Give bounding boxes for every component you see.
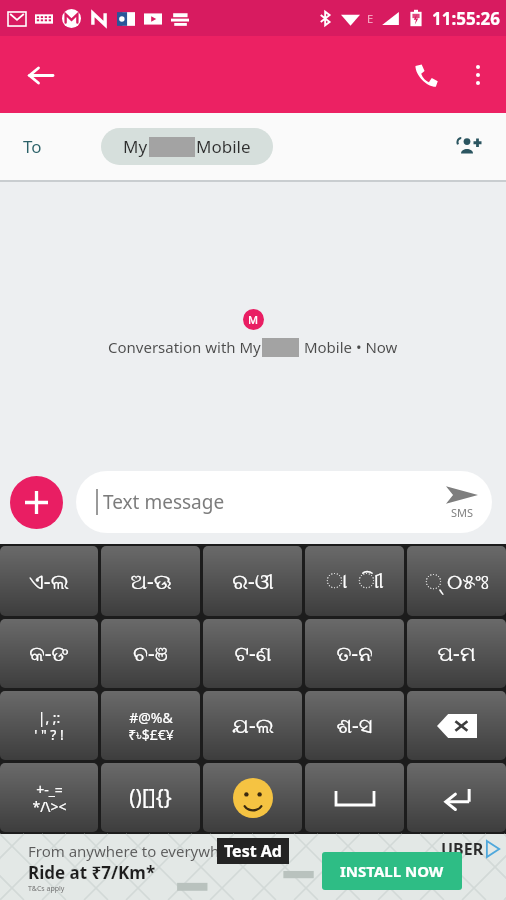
button[interactable]: SPACE <box>305 763 404 832</box>
staticText: ତ-ନ <box>336 639 373 668</box>
staticText: From anywhere to everywhere. <box>28 841 247 861</box>
button[interactable]: Back <box>12 47 68 103</box>
button[interactable]: କ-ଙ <box>0 619 98 688</box>
staticText: Mobile <box>196 135 251 158</box>
staticText: ଶ-ସ <box>336 711 373 740</box>
button[interactable]: DEL <box>407 691 506 760</box>
staticText: SMS <box>451 505 474 520</box>
staticText: Ride at ₹7/Km* <box>28 861 156 884</box>
staticText: ୍ ୦୫ଂଃ <box>425 567 489 596</box>
staticText: କ-ଙ <box>29 639 69 668</box>
button[interactable]: ୍ ୦୫ଂଃ <box>407 546 506 616</box>
staticText: M <box>248 312 259 327</box>
staticText: ା ିାୀ <box>326 571 384 592</box>
button[interactable]: ଶ-ସ <box>305 691 404 760</box>
staticText: ପ-ମ <box>437 639 476 668</box>
staticText: UBER <box>441 838 484 860</box>
staticText: My <box>123 135 148 158</box>
button[interactable]: More options <box>454 51 502 99</box>
staticText: Text message <box>103 489 446 515</box>
button[interactable]: My <box>101 128 273 165</box>
button[interactable]: Call <box>398 47 454 103</box>
button[interactable]: ଅ-ଊ <box>101 546 200 616</box>
button[interactable]: ENTER <box>407 763 506 832</box>
staticText: ଯ-ଲ <box>232 711 274 740</box>
staticText: E <box>367 11 374 26</box>
button[interactable]: ତ-ନ <box>305 619 404 688</box>
button[interactable]: ଚ-ଞ <box>101 619 200 688</box>
staticText: Mobile • Now <box>300 337 398 357</box>
staticText: ଅ-ଊ <box>130 567 172 596</box>
staticText: +-_= */\>< <box>32 780 67 816</box>
staticText: ଟ-ଣ <box>234 639 272 668</box>
button[interactable]: Text message <box>76 471 492 533</box>
button[interactable]: Add attachment <box>10 476 63 529</box>
button[interactable]: #@%& ₹৳$£€¥ <box>101 691 200 760</box>
staticText: ()[]{} <box>129 783 172 812</box>
button[interactable]: ଯ-ଲ <box>203 691 302 760</box>
button[interactable]: EMOJI <box>203 763 302 832</box>
button[interactable]: ()[]{} <box>101 763 200 832</box>
button[interactable]: +-_= */\>< <box>0 763 98 832</box>
staticText: |, ;: ' " ? ! <box>34 708 64 744</box>
button[interactable]: ର-ଓୀ <box>203 546 302 616</box>
staticText: 11:55:26 <box>432 7 500 30</box>
staticText: INSTALL NOW <box>340 861 444 881</box>
button[interactable]: ଏ-ଲ <box>0 546 98 616</box>
staticText: ର-ଓୀ <box>232 567 274 596</box>
button[interactable]: INSTALL NOW <box>322 852 462 890</box>
staticText: #@%& ₹৳$£€¥ <box>128 708 174 744</box>
button[interactable]: |, ;: ' " ? ! <box>0 691 98 760</box>
button[interactable]: ପ-ମ <box>407 619 506 688</box>
staticText: T&Cs apply <box>28 884 65 894</box>
staticText: To <box>23 135 42 158</box>
button[interactable]: ଟ-ଣ <box>203 619 302 688</box>
button[interactable]: Add recipient <box>446 124 492 170</box>
staticText: ଚ-ଞ <box>133 639 168 668</box>
button[interactable]: Send SMS <box>446 485 478 520</box>
staticText: ଏ-ଲ <box>29 567 69 596</box>
staticText: Test Ad <box>224 840 282 862</box>
button[interactable]: ା ିାୀ <box>305 546 404 616</box>
staticText: Conversation with My <box>108 337 261 357</box>
